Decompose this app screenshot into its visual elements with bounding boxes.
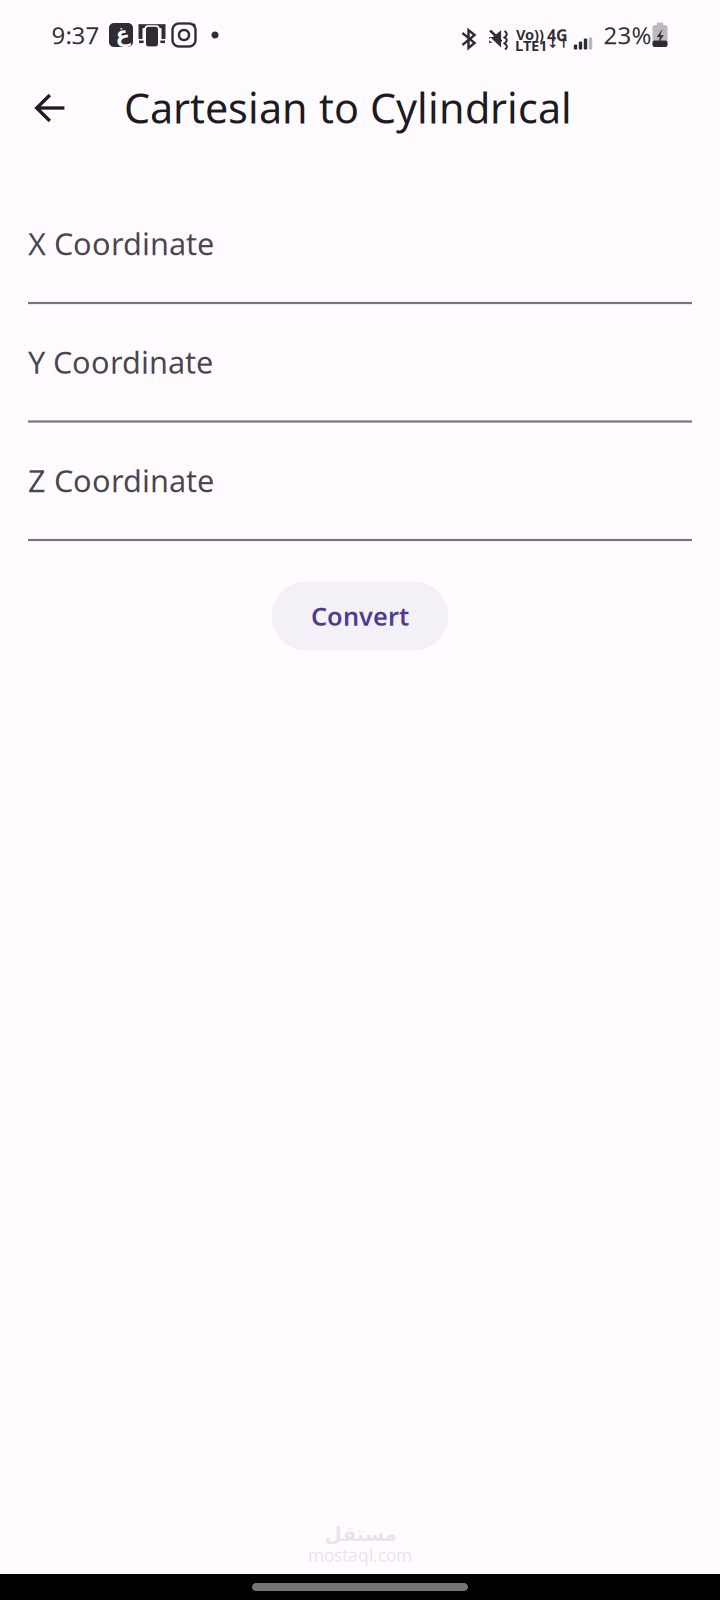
staticText: غ	[115, 22, 130, 47]
staticText: 4G	[547, 24, 568, 46]
staticText: mostaql.com	[308, 1543, 412, 1566]
staticText: مستقل	[324, 1523, 396, 1545]
staticText: 9:37	[51, 19, 99, 51]
staticText: X Coordinate	[28, 223, 214, 264]
staticText: Cartesian to Cylindrical	[124, 80, 572, 135]
staticText: Vo))	[516, 24, 544, 44]
staticText: ↓↑	[547, 35, 569, 51]
staticText: Convert	[311, 599, 409, 633]
staticText: LTE1	[515, 35, 547, 55]
staticText: 23%	[603, 19, 651, 51]
button[interactable]: Back	[0, 70, 124, 154]
staticText: Y Coordinate	[28, 341, 213, 382]
button[interactable]: Convert	[272, 581, 448, 650]
staticText: Z Coordinate	[28, 460, 214, 501]
